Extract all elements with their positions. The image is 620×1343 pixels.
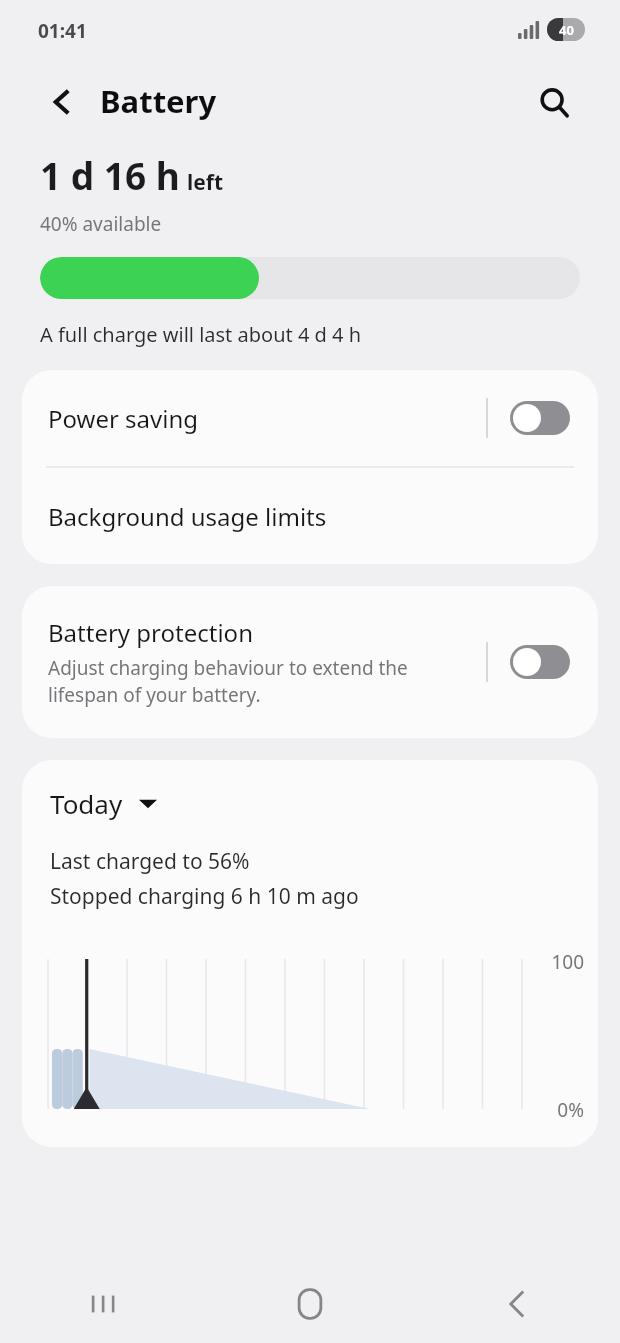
staticText: Stopped charging 6 h 10 m ago	[50, 882, 359, 911]
staticText: Battery	[100, 80, 217, 122]
button[interactable]: Back	[34, 74, 90, 130]
button[interactable]: Search	[524, 72, 586, 134]
staticText: Adjust charging behaviour to extend the …	[48, 655, 478, 708]
staticText: 40% available	[40, 211, 162, 237]
staticText: 1 d 16 h	[40, 150, 180, 200]
staticText: Battery protection	[48, 616, 253, 649]
button[interactable]: Toggle	[510, 645, 570, 679]
button[interactable]: Power saving	[22, 370, 598, 466]
button[interactable]: Toggle	[510, 401, 570, 435]
staticText: Last charged to 56%	[50, 847, 250, 876]
staticText: Background usage limits	[48, 500, 327, 533]
button[interactable]: Battery protection	[22, 586, 598, 738]
button[interactable]: Today	[50, 786, 157, 821]
button[interactable]: Background usage limits	[22, 468, 598, 564]
staticText: left	[187, 168, 224, 197]
staticText: 01:41	[38, 18, 87, 44]
staticText: 100	[551, 949, 584, 975]
button[interactable]: Home	[206, 1265, 413, 1343]
staticText: Today	[50, 786, 123, 821]
button[interactable]: Recents	[0, 1265, 206, 1343]
button[interactable]: Back	[413, 1265, 620, 1343]
staticText: 40	[559, 21, 574, 39]
staticText: Power saving	[48, 402, 486, 435]
staticText: 0%	[557, 1097, 584, 1123]
staticText: A full charge will last about 4 d 4 h	[40, 321, 362, 348]
